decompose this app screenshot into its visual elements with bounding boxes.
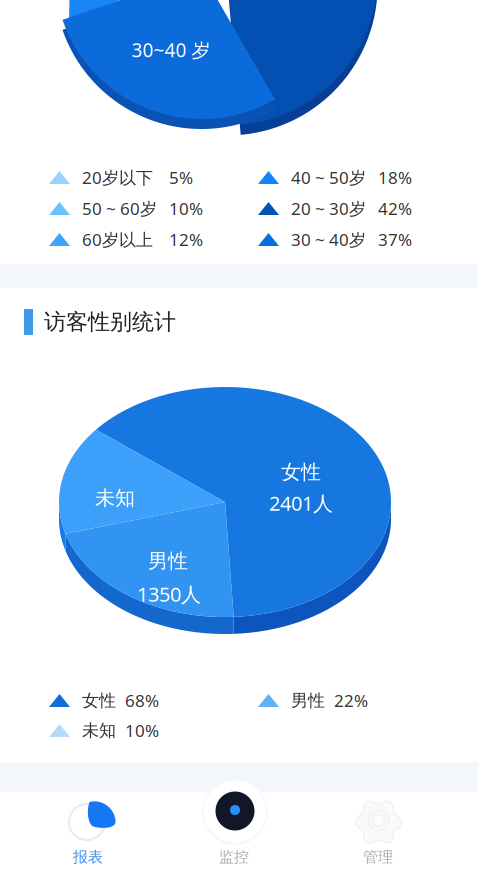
staticText: 5% (169, 166, 193, 189)
staticText: 37% (378, 228, 412, 251)
staticText: 42% (378, 197, 412, 220)
staticText: 男性 (291, 690, 325, 711)
button[interactable]: 管理 (0, 0, 478, 884)
staticText: 女性 (281, 459, 321, 485)
staticText: 20 ~ 30岁 (291, 197, 366, 220)
staticText: 1350人 (137, 580, 201, 608)
staticText: 20岁以下 (82, 166, 153, 189)
staticText: 40 ~ 50岁 (291, 166, 366, 189)
staticText: 22% (334, 689, 368, 712)
staticText: 报表 (73, 848, 103, 866)
staticText: 10% (169, 197, 203, 220)
button[interactable]: 报表 (0, 0, 478, 884)
staticText: 12% (169, 228, 203, 251)
staticText: 女性 (82, 690, 116, 711)
staticText: 未知 (82, 720, 116, 741)
staticText: 未知 (95, 485, 135, 511)
staticText: 30~40 岁 (131, 37, 210, 63)
staticText: 管理 (363, 848, 393, 866)
staticText: 68% (125, 689, 159, 712)
staticText: 监控 (219, 848, 249, 866)
staticText: 10% (125, 719, 159, 742)
staticText: 60岁以上 (82, 228, 153, 251)
staticText: 2401人 (269, 489, 333, 517)
staticText: 男性 (148, 548, 188, 574)
staticText: 50 ~ 60岁 (82, 197, 157, 220)
staticText: 18% (378, 166, 412, 189)
staticText: 30 ~ 40岁 (291, 228, 366, 251)
staticText: 访客性别统计 (44, 308, 176, 336)
button[interactable]: 监控 (0, 0, 478, 884)
